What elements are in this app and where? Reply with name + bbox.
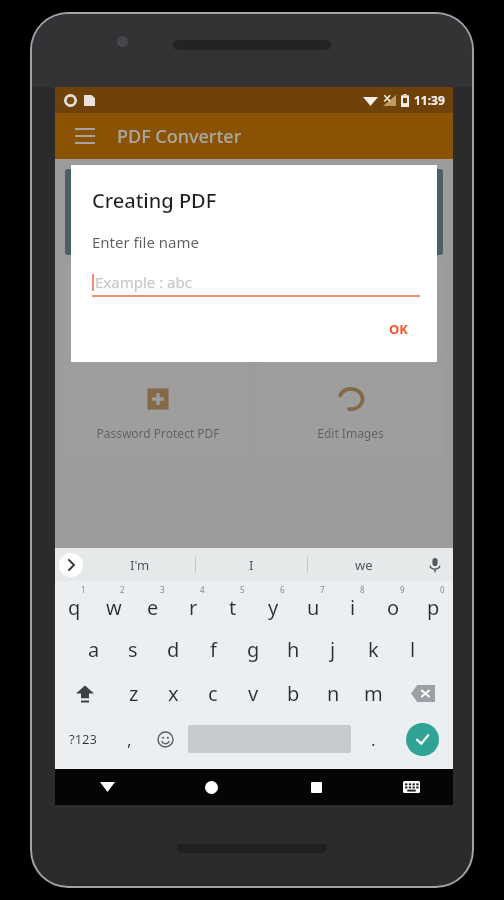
button[interactable]: d <box>153 627 193 671</box>
button[interactable]: Enter <box>406 723 439 756</box>
button[interactable]: , <box>111 715 147 763</box>
staticText: r <box>189 594 198 621</box>
button[interactable]: 7 <box>293 581 333 627</box>
button[interactable]: Emoji <box>147 715 184 763</box>
staticText: 3 <box>160 584 165 595</box>
staticText: 11:39 <box>414 92 445 108</box>
staticText: Enter file name <box>92 232 200 252</box>
staticText: j <box>330 636 336 663</box>
button[interactable]: x <box>153 671 193 715</box>
button[interactable]: f <box>193 627 233 671</box>
staticText: 7 <box>320 584 325 595</box>
button[interactable]: Open navigation menu <box>65 116 105 156</box>
button[interactable]: s <box>113 627 153 671</box>
button[interactable]: we <box>308 548 419 581</box>
staticText: 4 <box>200 584 205 595</box>
button[interactable]: 2 <box>94 581 133 627</box>
button[interactable]: h <box>273 627 313 671</box>
button[interactable]: m <box>353 671 393 715</box>
staticText: d <box>167 636 180 663</box>
button[interactable]: n <box>313 671 353 715</box>
button[interactable]: 8 <box>333 581 373 627</box>
button[interactable]: Home <box>159 769 264 805</box>
staticText: Creating PDF <box>92 187 217 214</box>
button[interactable]: OK <box>377 314 420 344</box>
button[interactable]: Backspace <box>393 671 453 715</box>
staticText: x <box>168 680 179 707</box>
button[interactable]: c <box>193 671 233 715</box>
staticText: 9 <box>400 584 405 595</box>
staticText: z <box>129 680 139 707</box>
staticText: a <box>88 636 100 663</box>
button[interactable]: Switch keyboard <box>369 769 453 805</box>
button[interactable]: ?123 <box>55 715 111 763</box>
staticText: we <box>355 556 373 574</box>
button[interactable]: Password Protect PDF <box>65 365 250 457</box>
staticText: g <box>247 636 260 663</box>
staticText: I'm <box>130 556 150 574</box>
button[interactable]: Recent apps <box>264 769 369 805</box>
staticText: w <box>106 594 122 621</box>
staticText: f <box>210 636 217 663</box>
staticText: e <box>147 594 159 621</box>
staticText: 6 <box>280 584 285 595</box>
button[interactable]: 5 <box>213 581 253 627</box>
button[interactable]: Shift <box>55 671 114 715</box>
button[interactable]: . <box>355 715 392 763</box>
staticText: s <box>128 636 138 663</box>
button[interactable]: b <box>273 671 313 715</box>
staticText: t <box>229 594 237 621</box>
button[interactable]: Example : abc <box>92 269 420 295</box>
button[interactable]: k <box>353 627 393 671</box>
staticText: l <box>410 636 416 663</box>
staticText: k <box>368 636 379 663</box>
button[interactable]: Back <box>55 769 159 805</box>
button[interactable]: 1 <box>55 581 94 627</box>
staticText: b <box>287 680 300 707</box>
staticText: , <box>127 728 132 751</box>
staticText: Example : abc <box>95 272 192 292</box>
button[interactable]: l <box>393 627 433 671</box>
button[interactable]: Edit Images <box>258 365 443 457</box>
staticText: v <box>248 680 259 707</box>
button[interactable]: More suggestions <box>59 553 83 577</box>
staticText: 0 <box>440 584 445 595</box>
button[interactable]: Images to PDF <box>65 265 250 357</box>
button[interactable]: 3 <box>133 581 173 627</box>
staticText: 8 <box>360 584 365 595</box>
staticText: m <box>364 680 383 707</box>
staticText: I <box>249 556 254 574</box>
button[interactable]: Text to PDF <box>258 265 443 357</box>
staticText: y <box>268 594 279 621</box>
staticText: q <box>68 594 81 621</box>
button[interactable]: 9 <box>373 581 413 627</box>
button[interactable]: Voice input <box>423 553 447 577</box>
button[interactable] <box>65 169 443 255</box>
staticText: 2 <box>120 584 125 595</box>
staticText: n <box>327 680 340 707</box>
staticText: o <box>387 594 400 621</box>
staticText: i <box>350 594 356 621</box>
button[interactable]: 0 <box>413 581 453 627</box>
button[interactable]: 4 <box>173 581 213 627</box>
button[interactable]: v <box>233 671 273 715</box>
staticText: h <box>287 636 300 663</box>
button[interactable]: 6 <box>253 581 293 627</box>
button[interactable]: I'm <box>85 548 195 581</box>
button[interactable]: g <box>233 627 273 671</box>
staticText: c <box>208 680 218 707</box>
staticText: PDF Converter <box>117 124 242 149</box>
staticText: 1 <box>81 584 86 595</box>
staticText: ?123 <box>69 730 97 748</box>
button[interactable]: j <box>313 627 353 671</box>
staticText: Edit Images <box>317 425 384 441</box>
button[interactable]: a <box>74 627 113 671</box>
staticText: Password Protect PDF <box>96 425 220 441</box>
button[interactable]: z <box>114 671 153 715</box>
staticText: p <box>427 594 440 621</box>
button[interactable]: I <box>196 548 307 581</box>
staticText: OK <box>389 320 408 338</box>
